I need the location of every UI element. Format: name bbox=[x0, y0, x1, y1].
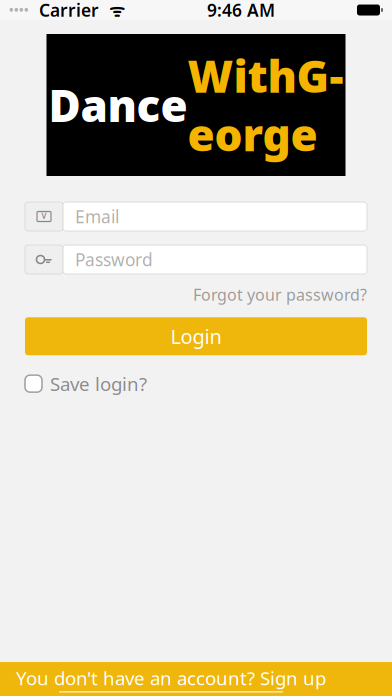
staticText: Forgot your password? bbox=[193, 284, 367, 305]
staticText: Dance bbox=[48, 76, 187, 134]
staticText: You don't have an account? Sign up bbox=[16, 666, 326, 690]
staticText: Password bbox=[75, 248, 153, 271]
staticText: •••• bbox=[9, 2, 29, 18]
button[interactable]: Forgot your password? bbox=[193, 280, 367, 309]
staticText: Login bbox=[170, 323, 221, 350]
staticText: ᯤ bbox=[99, 0, 125, 21]
button[interactable]: Save login? bbox=[25, 367, 147, 400]
staticText: Carrier bbox=[29, 0, 99, 21]
button[interactable]: Login bbox=[25, 317, 367, 355]
staticText: WithGeorge bbox=[187, 47, 343, 163]
staticText: Email bbox=[75, 205, 119, 228]
staticText: ∨ bbox=[40, 209, 48, 221]
button[interactable]: You don't have an account? Sign up bbox=[0, 662, 392, 696]
staticText: Save login? bbox=[50, 371, 147, 396]
staticText: 9:46 AM bbox=[207, 0, 275, 21]
